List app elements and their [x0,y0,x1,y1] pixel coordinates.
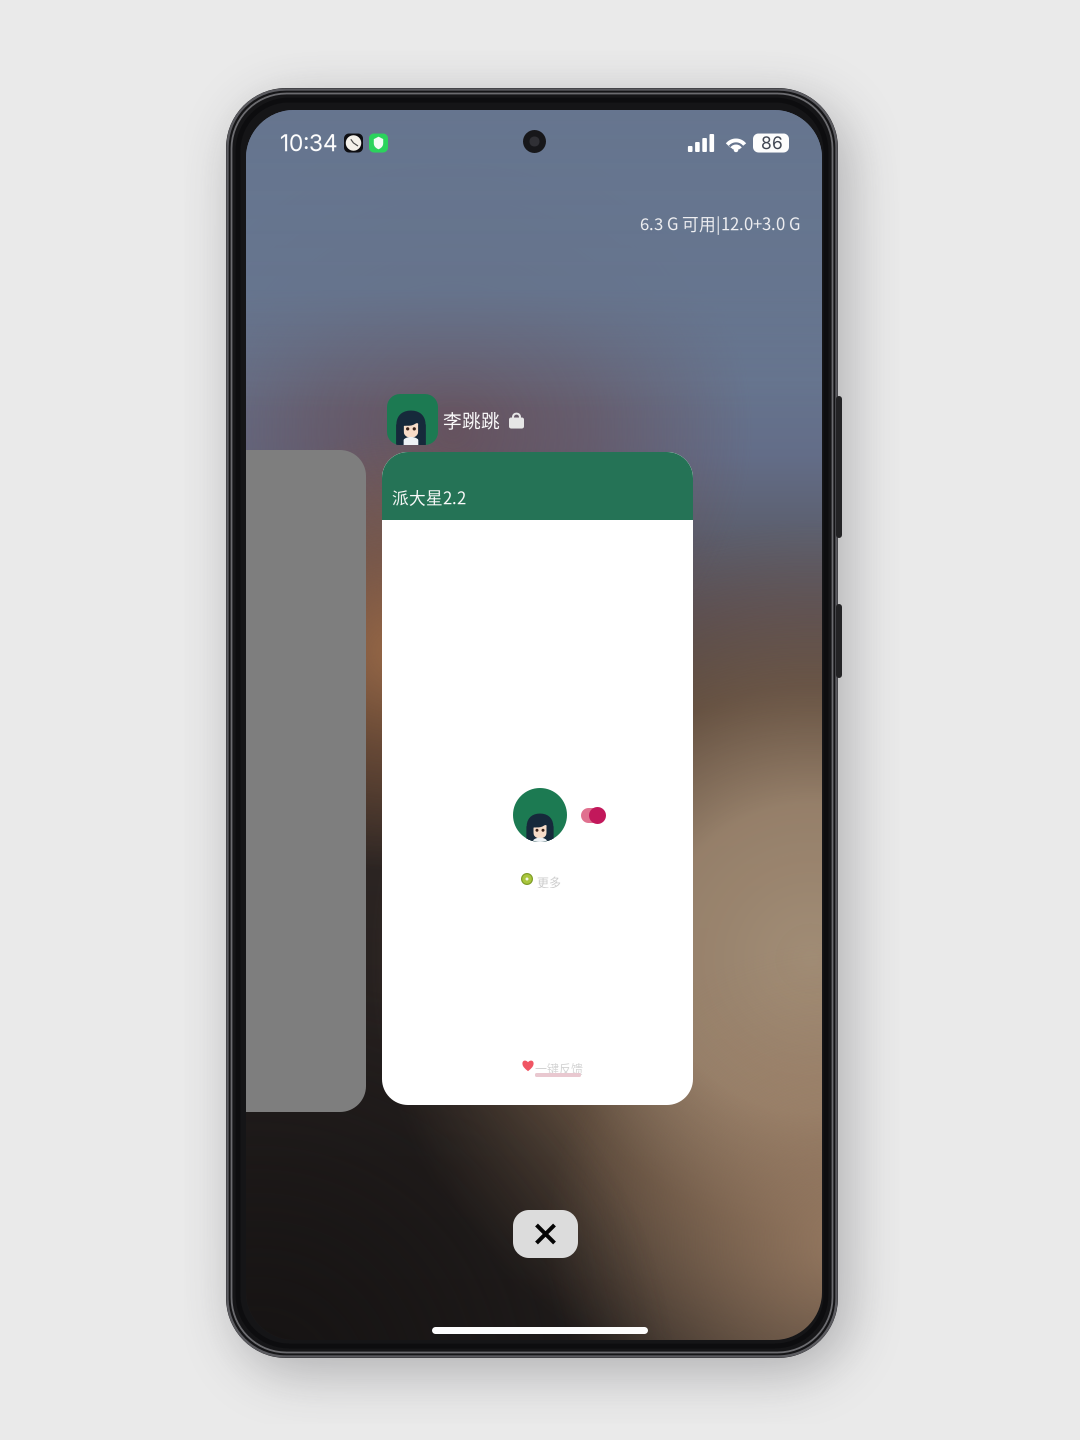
button[interactable]: Close all [513,1210,578,1258]
staticText: 86 [761,132,783,153]
staticText: 6.3 G 可用|12.0+3.0 G [640,211,800,235]
staticText: 李跳跳 [443,406,500,433]
staticText: 派大星2.2 [392,485,466,509]
staticText: 更多 [537,873,561,891]
staticText: 10:34 [280,129,338,157]
staticText: 一键反馈 [535,1060,583,1077]
